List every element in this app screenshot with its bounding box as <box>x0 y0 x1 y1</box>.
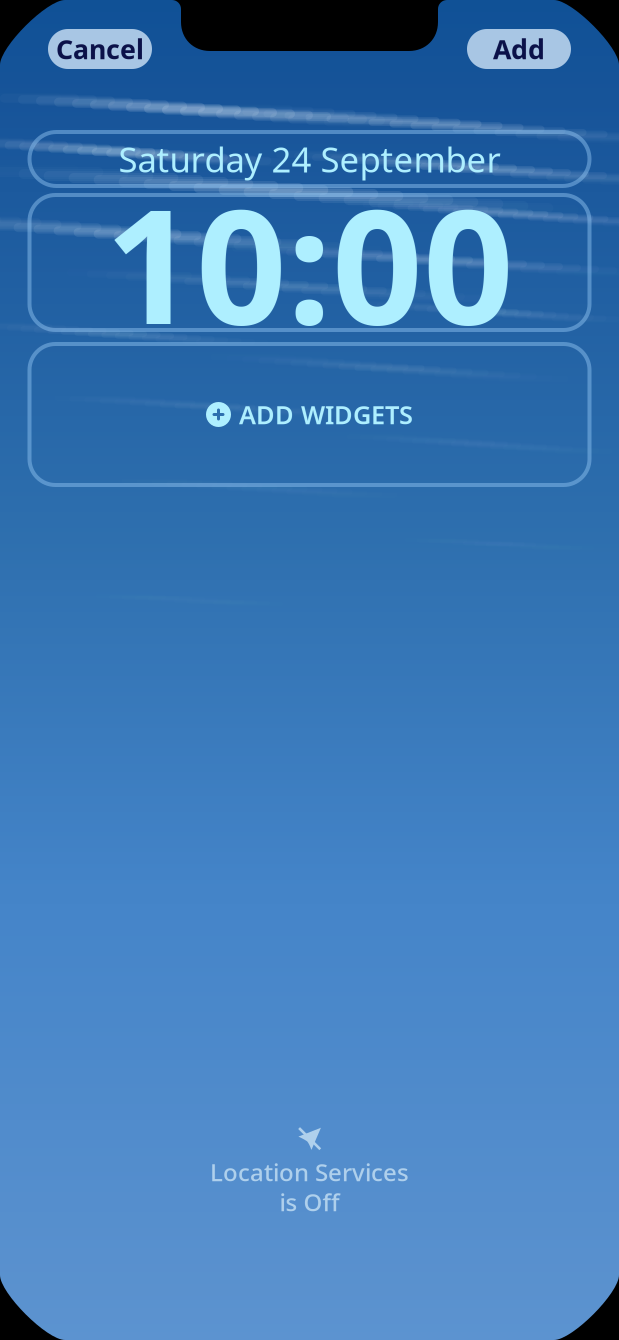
staticText: Add <box>493 31 545 67</box>
button[interactable]: ADD WIDGETS <box>29 344 589 485</box>
staticText: Location Services <box>210 1156 409 1188</box>
button[interactable]: 10:00 <box>29 195 589 330</box>
staticText: Cancel <box>56 31 144 67</box>
button[interactable]: Cancel <box>48 29 152 69</box>
staticText: is Off <box>279 1186 339 1218</box>
staticText: Saturday 24 September <box>118 136 500 182</box>
staticText: 10:00 <box>105 157 514 368</box>
staticText: ADD WIDGETS <box>239 398 413 431</box>
button[interactable]: Saturday 24 September <box>29 132 589 186</box>
button[interactable]: Add <box>467 29 571 69</box>
